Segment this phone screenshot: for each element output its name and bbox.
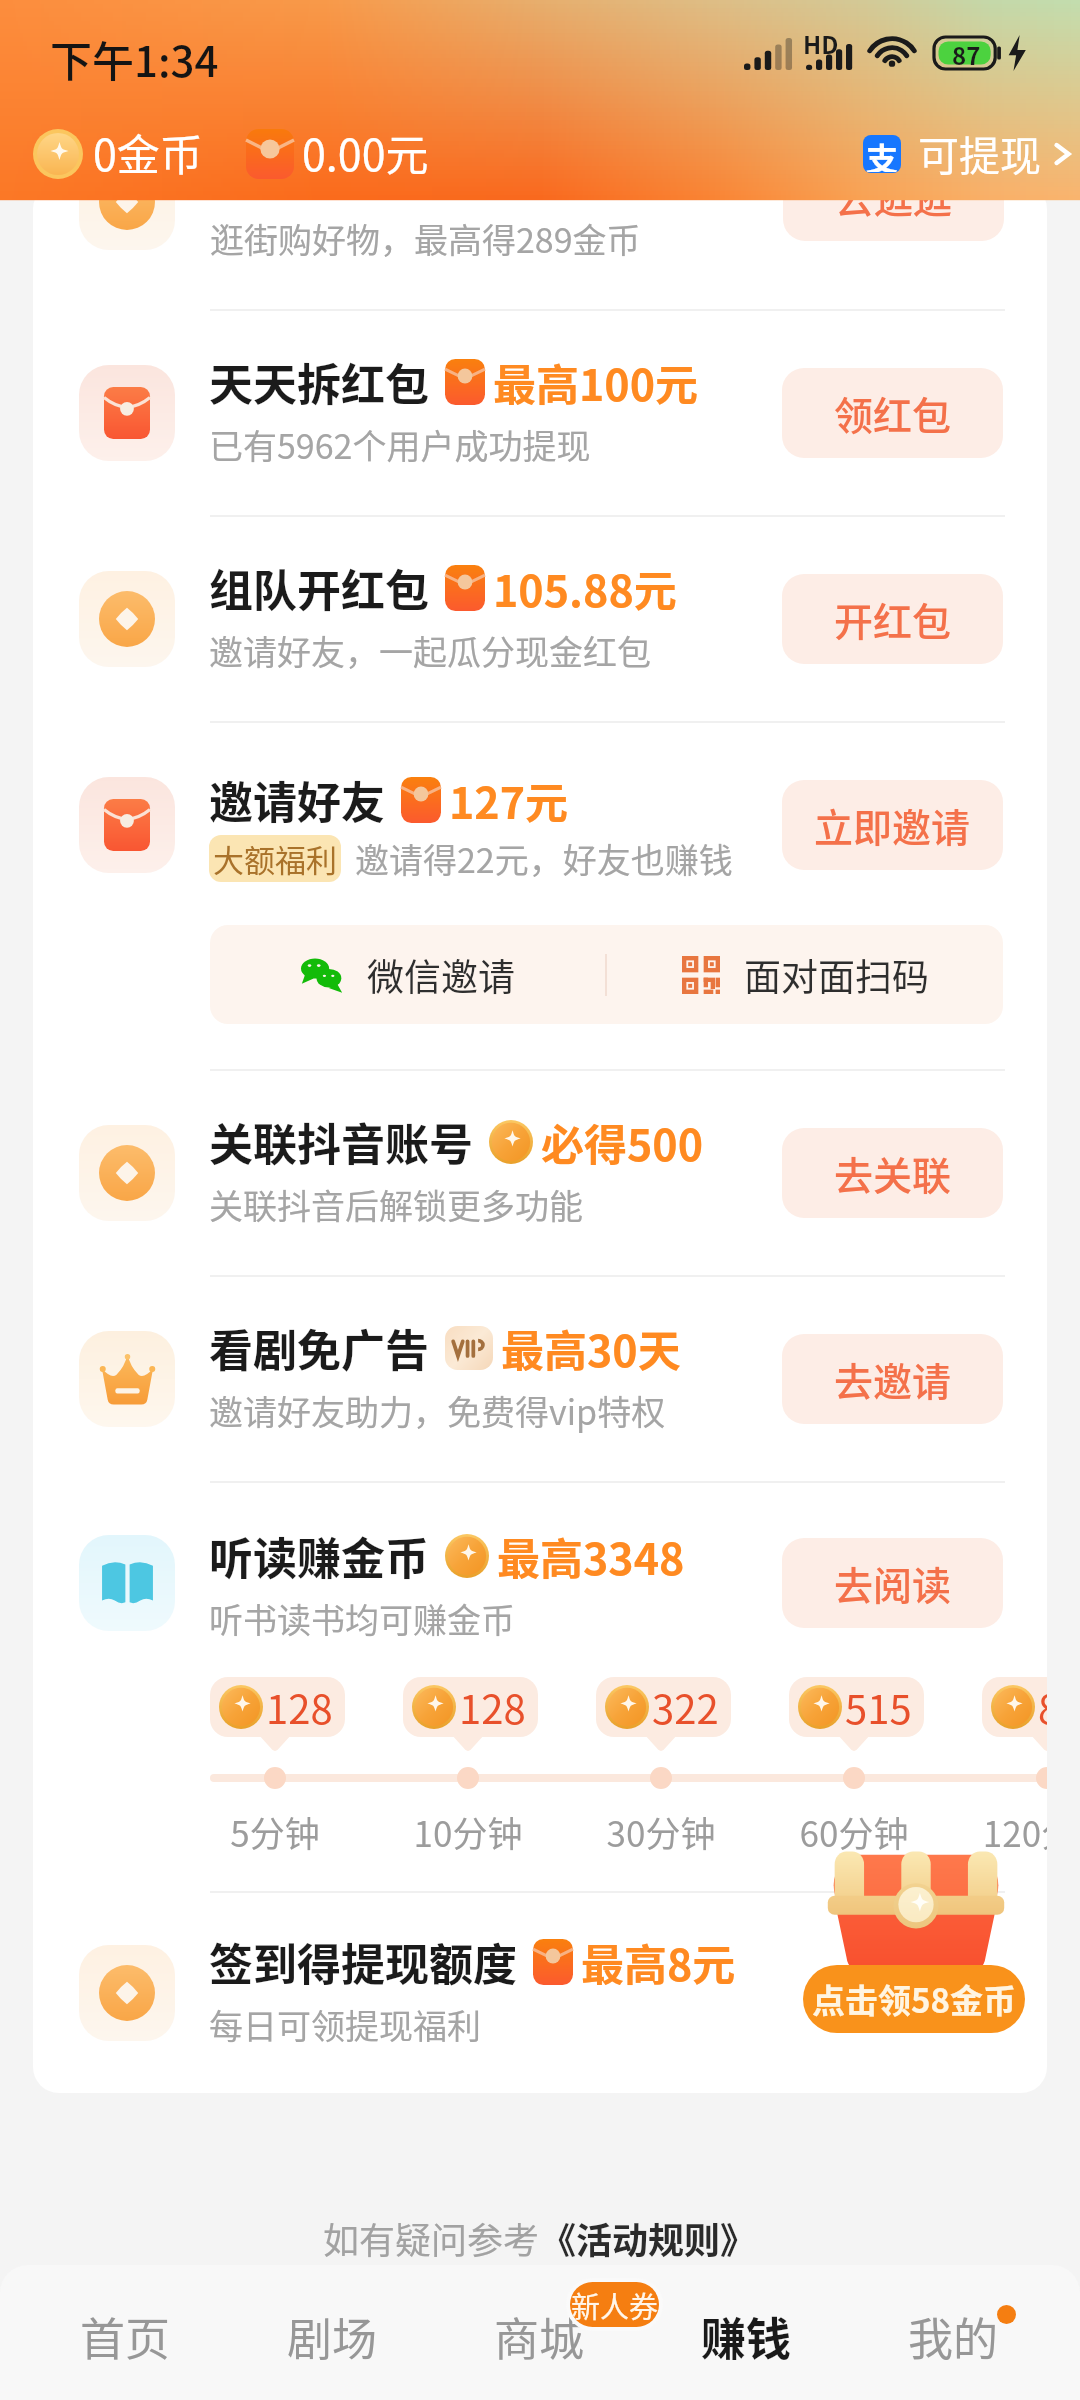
staticText: 最高3348 (497, 1525, 685, 1587)
staticText: 面对面扫码 (744, 948, 929, 1002)
button[interactable]: 签到得提现额度 (33, 1893, 1047, 2093)
button[interactable]: 关联抖音账号 (33, 1071, 1047, 1275)
button[interactable]: 去邀请 (782, 1334, 1003, 1424)
staticText: 邀请得22元，好友也赚钱 (355, 834, 733, 883)
button[interactable]: 微信邀请 (210, 925, 605, 1024)
staticText: 听书读书均可赚金币 (209, 1594, 515, 1643)
staticText: 0.00元 (302, 121, 429, 183)
staticText: 5分钟 (185, 1806, 365, 1857)
staticText: 最高30天 (501, 1317, 681, 1379)
staticText: 开红包 (834, 591, 952, 647)
staticText: 天天拆红包 (209, 350, 429, 414)
staticText: 87 (952, 37, 981, 69)
button[interactable]: 组队开红包 (33, 517, 1047, 721)
button[interactable]: 我的 (853, 2265, 1053, 2400)
staticText: 60分钟 (764, 1806, 944, 1857)
staticText: 关联抖音后解锁更多功能 (209, 1180, 583, 1229)
staticText: 下午1:34 (50, 28, 219, 89)
button[interactable]: 立即邀请 (782, 780, 1003, 870)
staticText: 听读赚金币 (209, 1524, 429, 1588)
button[interactable]: 领红包 (782, 368, 1003, 458)
button[interactable]: Withdraw via Alipay (863, 124, 1071, 183)
button[interactable]: 去关联 (782, 1128, 1003, 1218)
staticText: 大额福利 (213, 836, 337, 881)
button[interactable]: 128 (403, 1677, 538, 1737)
staticText: 逛街购好物，最高得289金币 (210, 214, 641, 263)
staticText: 可提现 (918, 123, 1041, 182)
staticText: 剧场 (287, 2304, 378, 2369)
button[interactable]: 商城 (439, 2265, 639, 2400)
button[interactable]: 322 (596, 1677, 731, 1737)
staticText: 邀请好友 (209, 768, 385, 832)
button[interactable]: 开红包 (782, 574, 1003, 664)
staticText: 515 (845, 1678, 912, 1736)
staticText: 商城 (494, 2304, 585, 2369)
button[interactable]: 赚钱 (646, 2265, 846, 2400)
staticText: 我的 (908, 2304, 999, 2369)
staticText: 10分钟 (378, 1806, 558, 1857)
staticText: 127元 (449, 769, 569, 831)
staticText: 如有疑问参考 (323, 2212, 540, 2264)
staticText: 新人券 (571, 2284, 659, 2326)
staticText: 微信邀请 (367, 948, 515, 1002)
staticText: 120分钟 (957, 1806, 1047, 1857)
button[interactable]: 剧场 (232, 2265, 432, 2400)
button[interactable]: 128 (210, 1677, 345, 1737)
staticText: 去关联 (834, 1145, 952, 1201)
staticText: 128 (459, 1678, 526, 1736)
staticText: 0金币 (93, 121, 203, 183)
staticText: HD (803, 26, 839, 61)
staticText: 签到得提现额度 (209, 1930, 517, 1994)
staticText: 已有5962个用户成功提现 (209, 420, 591, 469)
staticText: 领红包 (834, 385, 952, 441)
staticText: 首页 (80, 2304, 171, 2369)
staticText: 30分钟 (571, 1806, 751, 1857)
staticText: 看剧免广告 (209, 1316, 429, 1380)
staticText: 邀请好友助力，免费得vip特权 (209, 1386, 666, 1435)
staticText: 点击领58金币 (812, 1975, 1016, 2023)
button[interactable]: 800 (982, 1677, 1047, 1737)
button[interactable]: 逛街购好物，最高得289金币 (33, 183, 1047, 309)
button[interactable]: 天天拆红包 (33, 311, 1047, 515)
button[interactable]: 《活动规则》 (540, 2212, 757, 2264)
staticText: 128 (266, 1678, 333, 1736)
staticText: 必得500 (541, 1111, 704, 1173)
staticText: 105.88元 (493, 557, 677, 619)
button[interactable]: 点击领58金币 (803, 1847, 1025, 2037)
staticText: 最高100元 (493, 351, 699, 413)
button[interactable]: 看剧免广告 (33, 1277, 1047, 1481)
button[interactable]: 去阅读 (782, 1538, 1003, 1628)
staticText: 关联抖音账号 (209, 1110, 473, 1174)
staticText: 赚钱 (701, 2304, 792, 2369)
staticText: 支 (866, 135, 899, 172)
staticText: 组队开红包 (209, 556, 429, 620)
staticText: 322 (652, 1678, 719, 1736)
staticText: 邀请好友，一起瓜分现金红包 (209, 626, 651, 675)
staticText: 每日可领提现福利 (209, 2000, 481, 2049)
staticText: 去逛逛 (835, 183, 953, 224)
button[interactable]: 去逛逛 (783, 183, 1004, 241)
button[interactable]: 邀请好友 (33, 723, 1047, 927)
staticText: 去邀请 (834, 1351, 952, 1407)
button[interactable]: 面对面扫码 (607, 925, 1003, 1024)
staticText: 800 (1038, 1678, 1047, 1736)
button[interactable]: 首页 (25, 2265, 225, 2400)
button[interactable]: 点击领58金币 (803, 1965, 1025, 2033)
staticText: 去阅读 (834, 1555, 952, 1611)
staticText: 最高8元 (581, 1931, 736, 1993)
button[interactable]: 新人券 (570, 2282, 659, 2327)
button[interactable]: 听读赚金币 (33, 1483, 1047, 1683)
staticText: 立即邀请 (814, 797, 971, 853)
button[interactable]: 515 (789, 1677, 924, 1737)
